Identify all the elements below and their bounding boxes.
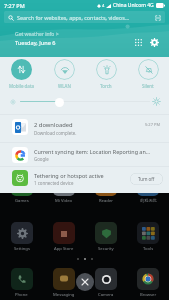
- staticText: China Unicom 4G: [113, 2, 154, 9]
- staticText: Torch: [100, 83, 112, 89]
- button[interactable]: Reader: [95, 174, 117, 196]
- staticText: Google: [34, 156, 49, 162]
- button[interactable]: Turn off: [130, 173, 163, 185]
- staticText: Tethering or hotspot active: [34, 172, 104, 179]
- staticText: Current syncing item: Location Reporting…: [34, 148, 151, 155]
- button[interactable]: Tools: [137, 222, 159, 244]
- button[interactable]: Browser: [137, 268, 159, 290]
- staticText: Mi Video: [55, 198, 73, 204]
- staticText: 4: [102, 3, 105, 8]
- staticText: Settings: [14, 246, 30, 252]
- staticText: Search for websites, apps, contacts, vid…: [17, 14, 155, 21]
- button[interactable]: Settings: [148, 36, 161, 49]
- staticText: Tuesday, June 6: [15, 39, 56, 47]
- staticText: 2 downloaded: [34, 121, 73, 129]
- staticText: Get weather info >: [15, 31, 59, 38]
- button[interactable]: Mi Video: [53, 174, 75, 196]
- staticText: Games: [15, 198, 29, 204]
- staticText: Camera: [98, 292, 114, 298]
- button[interactable]: Edit quick settings: [131, 35, 145, 49]
- button[interactable]: Phone: [11, 268, 33, 290]
- staticText: Silent: [142, 83, 154, 89]
- staticText: Security: [98, 246, 114, 252]
- staticText: Tools: [143, 246, 154, 252]
- button[interactable]: Messaging: [53, 268, 75, 290]
- button[interactable]: Security: [95, 222, 117, 244]
- staticText: App Store: [54, 246, 74, 252]
- staticText: 前程无忧: [140, 198, 157, 203]
- button[interactable]: Current syncing item: Location Reporting…: [0, 143, 169, 166]
- button[interactable]: App Store: [53, 222, 75, 244]
- staticText: Messaging: [53, 292, 75, 298]
- staticText: Mobile data: [9, 83, 35, 89]
- button[interactable]: 2 downloaded: [0, 115, 169, 142]
- button[interactable]: Settings: [11, 222, 33, 244]
- button[interactable]: Games: [11, 174, 33, 196]
- button[interactable]: Search for websites, apps, contacts, vid…: [4, 11, 165, 23]
- button[interactable]: Torch: [85, 59, 127, 89]
- staticText: 7:27 PM: [4, 2, 25, 9]
- button[interactable]: Silent: [127, 59, 169, 89]
- staticText: Phone: [15, 292, 28, 298]
- button[interactable]: Mobile data: [0, 59, 43, 89]
- staticText: Turn off: [138, 176, 155, 182]
- button[interactable]: Close notification shade: [76, 273, 94, 291]
- button[interactable]: 前程无忧: [137, 174, 159, 196]
- staticText: Browser: [140, 292, 157, 298]
- staticText: WLAN: [58, 83, 71, 89]
- button[interactable]: Brightness: [55, 98, 64, 107]
- staticText: Download complete.: [34, 130, 77, 136]
- button[interactable]: WLAN: [43, 59, 85, 89]
- button[interactable]: Camera: [95, 268, 117, 290]
- staticText: 1 connected device: [34, 180, 74, 186]
- staticText: 5:27 PM: [145, 122, 161, 127]
- staticText: Reader: [99, 198, 113, 204]
- button[interactable]: Tethering or hotspot active: [0, 167, 169, 193]
